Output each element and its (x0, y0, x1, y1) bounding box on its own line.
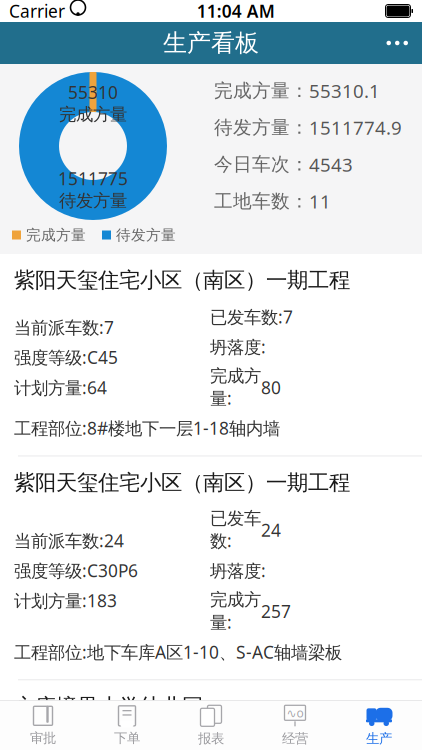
staticText: 强度等级: (14, 559, 87, 582)
button[interactable]: 审批 (1, 701, 85, 749)
staticText: 55310 (68, 81, 118, 104)
staticText: 生产 (366, 730, 392, 747)
staticText: 今日车次： (214, 153, 309, 176)
staticText: 待发方量 (59, 190, 127, 211)
staticText: 下单 (114, 730, 140, 746)
staticText: 183 (87, 589, 117, 612)
button[interactable]: ∿o (253, 701, 337, 749)
staticText: 完成方量: (210, 589, 261, 633)
button[interactable]: 紫阳天玺住宅小区（南区）一期工程 (0, 254, 422, 456)
staticText: 已发车数: (210, 732, 261, 750)
staticText: C30P6 (87, 559, 138, 582)
staticText: 80 (261, 376, 281, 399)
staticText: 1511775 (58, 167, 128, 190)
button[interactable]: 紫阳天玺住宅小区（南区）一期工程 (0, 457, 422, 679)
staticText: 24 (261, 518, 281, 541)
staticText: 完成方量 (59, 104, 127, 125)
staticText: 生产看板 (163, 28, 259, 58)
staticText: 55310.1 (309, 78, 380, 103)
staticText: 经营 (282, 730, 308, 747)
staticText: 计划方量: (14, 376, 87, 399)
staticText: 7 (283, 305, 293, 328)
staticText: 紫阳天玺住宅小区（南区）一期工程 (14, 267, 350, 293)
staticText: ∿o (286, 705, 303, 721)
button[interactable]: 永康境界小学幼儿园 (0, 680, 422, 750)
staticText: 11:04 AM (197, 0, 275, 22)
staticText: 完成方量 (26, 226, 86, 244)
staticText: 147 (261, 742, 291, 750)
staticText: Carrier (9, 0, 65, 22)
staticText: 计划方量: (14, 589, 87, 612)
staticText: 257 (261, 600, 291, 623)
staticText: 24 (104, 529, 124, 552)
staticText: 报表 (198, 730, 224, 747)
staticText: 当前派车数: (14, 316, 104, 339)
staticText: 完成方量: (210, 365, 261, 410)
staticText: 待发方量： (214, 116, 309, 139)
staticText: 强度等级: (14, 346, 87, 369)
staticText: 完成方量： (214, 79, 309, 102)
staticText: C45 (87, 346, 118, 369)
staticText: 工程部位:8#楼地下一层1-18轴内墙 (14, 417, 280, 440)
staticText: 已发车数: (210, 305, 283, 328)
staticText: 永康境界小学幼儿园 (14, 693, 203, 720)
button[interactable]: 报表 (169, 701, 253, 749)
staticText: 64 (87, 376, 107, 399)
staticText: 4543 (309, 152, 353, 177)
staticText: 已发车数: (210, 508, 261, 552)
staticText: 工地车数： (214, 190, 309, 213)
staticText: 11 (309, 189, 331, 214)
staticText: 当前派车数: (14, 529, 104, 552)
staticText: 审批 (30, 730, 56, 746)
staticText: 工程部位:地下车库A区1-10、S-AC轴墙梁板 (14, 640, 342, 663)
staticText: 7 (104, 316, 114, 339)
staticText: 坍落度: (210, 559, 266, 582)
button[interactable]: 下单 (85, 701, 169, 749)
staticText: 1511774.9 (309, 115, 402, 140)
staticText: 待发方量 (116, 226, 176, 244)
staticText: 紫阳天玺住宅小区（南区）一期工程 (14, 470, 350, 496)
button[interactable]: More options (372, 22, 422, 64)
button[interactable]: 生产 (337, 701, 421, 749)
staticText: 坍落度: (210, 335, 266, 358)
